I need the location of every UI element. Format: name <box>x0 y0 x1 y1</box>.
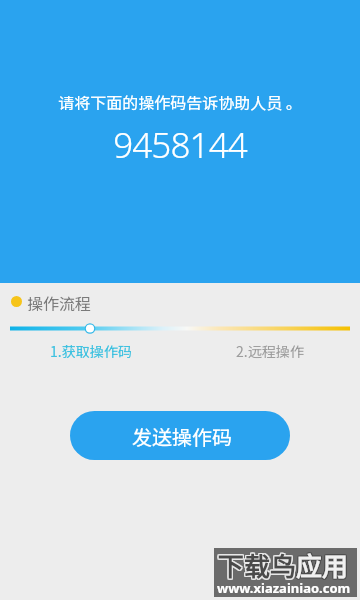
staticText: 应用 <box>295 547 348 585</box>
staticText: 下载鸟 <box>219 545 298 583</box>
staticText: 下载鸟 <box>218 545 297 583</box>
staticText: www.xiazainiao.com <box>217 579 351 597</box>
staticText: 9458144 <box>0 121 360 169</box>
staticText: 下载鸟 <box>219 547 298 585</box>
staticText: 应用 <box>296 546 349 584</box>
staticText: 2.远程操作 <box>236 341 304 361</box>
staticText: 下载鸟 <box>218 547 297 585</box>
staticText: 操作流程 <box>27 291 92 313</box>
button[interactable]: 发送操作码 <box>70 411 290 460</box>
staticText: 1.获取操作码 <box>50 341 132 361</box>
button[interactable]: 操作流程 <box>0 290 360 312</box>
staticText: 应用 <box>297 546 350 584</box>
staticText: 应用 <box>296 547 349 585</box>
staticText: 应用 <box>297 547 350 585</box>
button[interactable]: 1.获取操作码 <box>50 341 132 361</box>
staticText: 发送操作码 <box>132 422 232 451</box>
staticText: 应用 <box>297 545 350 583</box>
staticText: 下载鸟 <box>219 546 298 584</box>
staticText: 下载鸟 <box>217 547 296 585</box>
other: Watermark <box>214 548 357 597</box>
staticText: 应用 <box>296 545 349 583</box>
staticText: 请将下面的操作码告诉协助人员 。 <box>0 90 360 113</box>
staticText: 下载鸟 <box>218 546 297 584</box>
staticText: 应用 <box>295 546 348 584</box>
staticText: 下载鸟 <box>217 545 296 583</box>
button[interactable]: 2.远程操作 <box>236 341 304 361</box>
staticText: 下载鸟 <box>217 546 296 584</box>
staticText: 应用 <box>295 545 348 583</box>
